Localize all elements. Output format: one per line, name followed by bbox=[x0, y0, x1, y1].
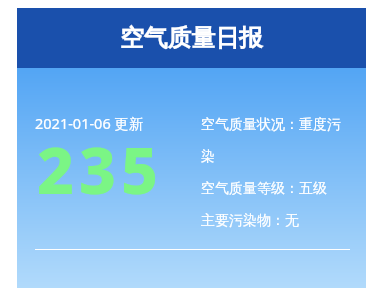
staticText: 染 bbox=[201, 148, 215, 166]
staticText: 主要污染物：无 bbox=[201, 212, 299, 230]
staticText: 2021-01-06 更新 bbox=[35, 113, 144, 133]
button[interactable]: 空气质量日报详情 bbox=[17, 68, 366, 288]
button[interactable]: 空气质量日报 bbox=[17, 8, 366, 68]
staticText: 空气质量状况：重度污 bbox=[201, 116, 341, 134]
staticText: 空气质量日报 bbox=[120, 23, 263, 53]
staticText: 空气质量等级：五级 bbox=[201, 180, 327, 198]
staticText: 235 bbox=[37, 126, 163, 213]
